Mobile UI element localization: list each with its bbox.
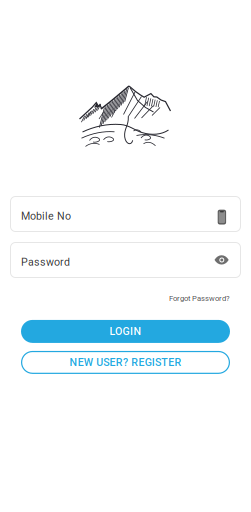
button[interactable]: LOGIN [21,320,230,343]
staticText: LOGIN [110,325,141,338]
staticText: NEW USER? REGISTER [69,356,182,369]
button[interactable]: NEW USER? REGISTER [21,351,230,374]
button[interactable]: Forgot Password? [169,294,230,303]
staticText: Mobile No [21,210,71,222]
button[interactable]: Mobile No [10,196,241,232]
button[interactable]: Password [10,242,241,278]
staticText: Password [21,256,70,268]
staticText: Forgot Password? [169,294,230,303]
